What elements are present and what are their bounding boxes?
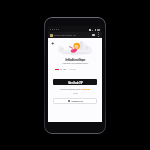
- staticText: 812345: [69, 68, 76, 71]
- staticText: atau: [73, 91, 78, 94]
- button[interactable]: Verifikasi Email: [53, 98, 97, 104]
- staticText: Verifikasi Email: [71, 99, 83, 102]
- button[interactable]: Kirim Kode OTP: [53, 79, 97, 85]
- staticText: Kirim Kode OTP: [68, 81, 83, 84]
- button[interactable]: Back: [50, 41, 55, 46]
- button[interactable]: Pesan Tiket Kereta Api: [48, 32, 102, 38]
- staticText: Verifikasi Nomor Telepon: [65, 58, 85, 61]
- button[interactable]: +62: [55, 68, 76, 71]
- staticText: Dengan melanjutkan, setuju: [60, 87, 81, 90]
- button[interactable]: Ketentuan: [81, 87, 90, 90]
- staticText: Masukkan nomor telepon kamu: [62, 61, 88, 64]
- other: Notifications: [92, 34, 95, 36]
- staticText: Pesan Tiket Kereta Api: [54, 34, 76, 37]
- staticText: +62: [63, 68, 67, 71]
- other: More options: [98, 32, 99, 38]
